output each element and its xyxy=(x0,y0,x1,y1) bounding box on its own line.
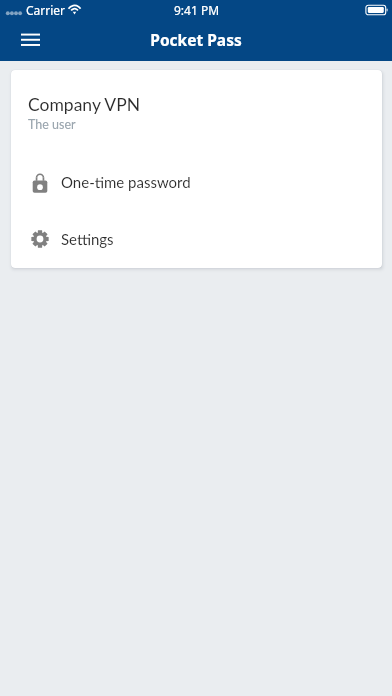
button[interactable]: Settings xyxy=(11,210,382,267)
staticText: The user xyxy=(28,117,76,132)
staticText: Pocket Pass xyxy=(150,29,242,50)
button[interactable]: One-time password xyxy=(11,153,382,210)
staticText: Settings xyxy=(61,230,114,248)
button[interactable]: Open navigation menu xyxy=(17,28,43,54)
staticText: 9:41 PM xyxy=(174,2,220,18)
staticText: Carrier xyxy=(26,2,66,18)
staticText: One-time password xyxy=(61,173,191,191)
staticText: Company VPN xyxy=(28,94,141,115)
